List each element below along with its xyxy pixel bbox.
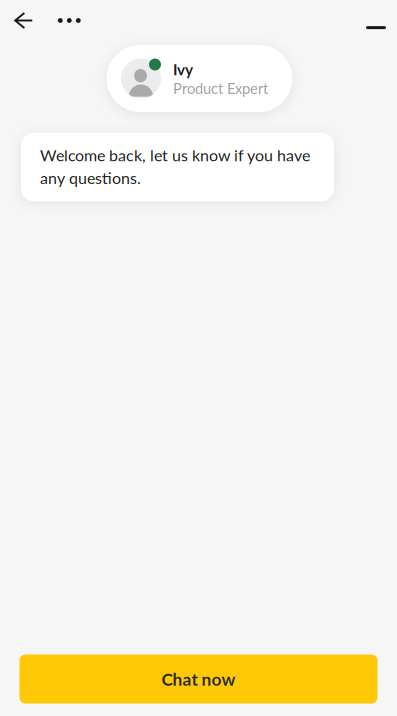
staticText: Welcome back, let us know if you have (40, 145, 310, 165)
button[interactable]: Back (6, 2, 42, 38)
staticText: any questions. (40, 168, 141, 187)
button[interactable]: Chat now (19, 654, 377, 703)
staticText: Ivy (173, 60, 193, 78)
staticText: Chat now (161, 669, 235, 689)
staticText: Product Expert (173, 79, 268, 97)
button[interactable]: More options (51, 2, 87, 38)
button[interactable]: Minimise (358, 10, 394, 46)
